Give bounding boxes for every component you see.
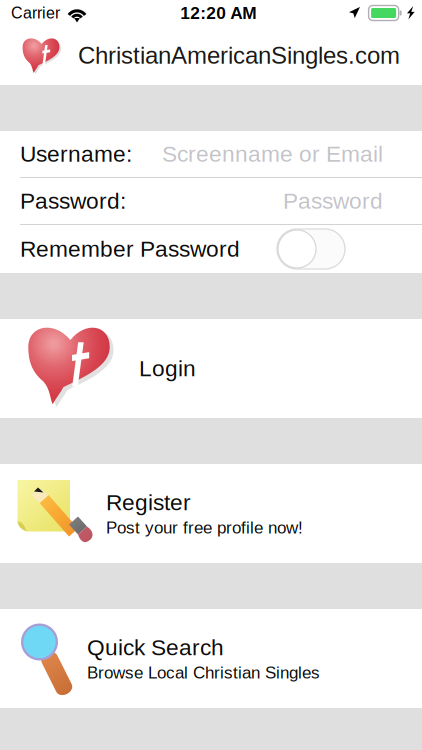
staticText: Quick Search — [87, 635, 224, 660]
button[interactable]: Password: — [0, 178, 422, 224]
button[interactable]: Username: — [0, 131, 422, 177]
button[interactable]: Register — [0, 464, 422, 563]
staticText: Password: — [20, 188, 126, 214]
staticText: Remember Password — [20, 236, 240, 262]
staticText: Register — [106, 490, 191, 515]
staticText: Screenname or Email — [162, 141, 383, 167]
staticText: Login — [139, 356, 196, 381]
staticText: Post your free profile now! — [106, 518, 303, 537]
button[interactable]: Remember Password — [0, 225, 422, 273]
button[interactable]: Quick Search — [0, 609, 422, 708]
staticText: Browse Local Christian Singles — [87, 663, 320, 682]
staticText: ChristianAmericanSingles.com — [78, 42, 400, 69]
staticText: Username: — [20, 141, 132, 167]
staticText: Password — [283, 188, 383, 214]
button[interactable]: Login — [0, 319, 422, 418]
staticText: Carrier — [11, 4, 60, 22]
staticText: 12:20 AM — [180, 3, 256, 23]
